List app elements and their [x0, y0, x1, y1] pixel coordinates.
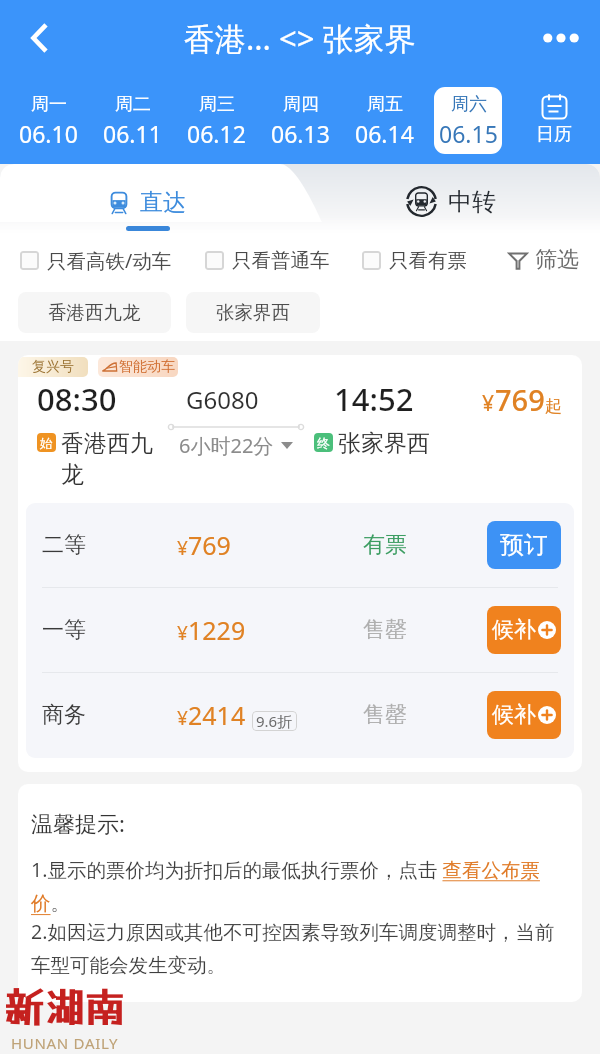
- button[interactable]: 周三: [182, 87, 250, 154]
- button[interactable]: 周一: [14, 87, 82, 154]
- button[interactable]: 只看高铁/动车: [20, 247, 172, 274]
- staticText: 只看高铁/动车: [47, 247, 172, 274]
- staticText: 1.显示的票价均为折扣后的最低执行票价，点击 查看公布票价。: [31, 856, 569, 916]
- button[interactable]: 周五: [350, 87, 418, 154]
- staticText: 1229: [188, 613, 246, 647]
- staticText: 06.12: [187, 118, 246, 149]
- staticText: 预订: [500, 530, 548, 560]
- staticText: 张家界西: [216, 301, 290, 324]
- button[interactable]: 直达: [0, 164, 294, 236]
- staticText: 中转: [448, 187, 496, 217]
- staticText: 769: [188, 528, 231, 562]
- staticText: 周二: [115, 93, 151, 116]
- staticText: 新湖南: [4, 984, 124, 1031]
- staticText: 候补: [492, 616, 536, 644]
- staticText: 周五: [367, 93, 403, 116]
- button[interactable]: Calendar: [508, 76, 600, 164]
- staticText: 温馨提示:: [31, 808, 125, 838]
- staticText: 只看有票: [389, 248, 467, 273]
- staticText: 06.10: [19, 118, 78, 149]
- staticText: 售罄: [363, 616, 407, 644]
- staticText: 始: [40, 435, 53, 451]
- button[interactable]: 预订: [487, 521, 561, 569]
- button[interactable]: 周二: [98, 87, 166, 154]
- staticText: 有票: [363, 531, 407, 559]
- staticText: 香港西九龙: [48, 301, 141, 324]
- button[interactable]: 候补: [487, 691, 561, 739]
- staticText: ¥: [177, 535, 188, 561]
- button[interactable]: Back: [18, 16, 62, 60]
- button[interactable]: 香港西九龙: [18, 292, 171, 333]
- staticText: 日历: [536, 123, 572, 146]
- staticText: 张家界西: [338, 429, 430, 458]
- button[interactable]: 只看有票: [362, 248, 467, 273]
- staticText: ¥: [177, 620, 188, 646]
- staticText: 08:30: [37, 378, 117, 420]
- staticText: 筛选: [535, 246, 579, 274]
- staticText: 06.14: [355, 118, 414, 149]
- button[interactable]: 中转: [300, 164, 600, 236]
- staticText: 售罄: [363, 701, 407, 729]
- button[interactable]: 周六: [434, 87, 502, 154]
- staticText: 周六: [451, 93, 487, 116]
- staticText: 起: [545, 396, 562, 417]
- staticText: 终: [317, 435, 330, 451]
- staticText: 06.13: [271, 118, 330, 149]
- staticText: 商务: [42, 701, 86, 729]
- staticText: 智能动车: [119, 358, 175, 376]
- staticText: 候补: [492, 701, 536, 729]
- staticText: HUNAN DAILY: [11, 1033, 119, 1053]
- staticText: 周三: [199, 93, 235, 116]
- button[interactable]: More options: [534, 11, 588, 65]
- staticText: 周四: [283, 93, 319, 116]
- staticText: 周一: [31, 93, 67, 116]
- staticText: ¥: [177, 705, 188, 731]
- staticText: G6080: [186, 383, 259, 416]
- staticText: 6小时22分: [179, 432, 274, 459]
- staticText: 769: [495, 380, 545, 419]
- button[interactable]: 筛选: [508, 246, 579, 274]
- staticText: 香港... <> 张家界: [184, 17, 416, 59]
- button[interactable]: 候补: [487, 606, 561, 654]
- staticText: 复兴号: [32, 358, 74, 376]
- button[interactable]: 张家界西: [186, 292, 320, 333]
- button[interactable]: 周四: [266, 87, 334, 154]
- staticText: ¥: [482, 389, 495, 418]
- staticText: 2414: [188, 698, 246, 732]
- staticText: 14:52: [334, 378, 414, 420]
- staticText: 直达: [140, 188, 186, 217]
- staticText: 2.如因运力原因或其他不可控因素导致列车调度调整时，当前车型可能会发生变动。: [31, 918, 569, 978]
- staticText: 9.6折: [256, 711, 293, 731]
- staticText: 只看普通车: [232, 248, 330, 273]
- staticText: 香港西九龙: [61, 429, 175, 489]
- staticText: 06.15: [439, 118, 498, 149]
- staticText: 06.11: [103, 118, 162, 149]
- button[interactable]: 只看普通车: [205, 248, 330, 273]
- staticText: 二等: [42, 531, 86, 559]
- button[interactable]: 复兴号: [18, 355, 582, 772]
- staticText: 一等: [42, 616, 86, 644]
